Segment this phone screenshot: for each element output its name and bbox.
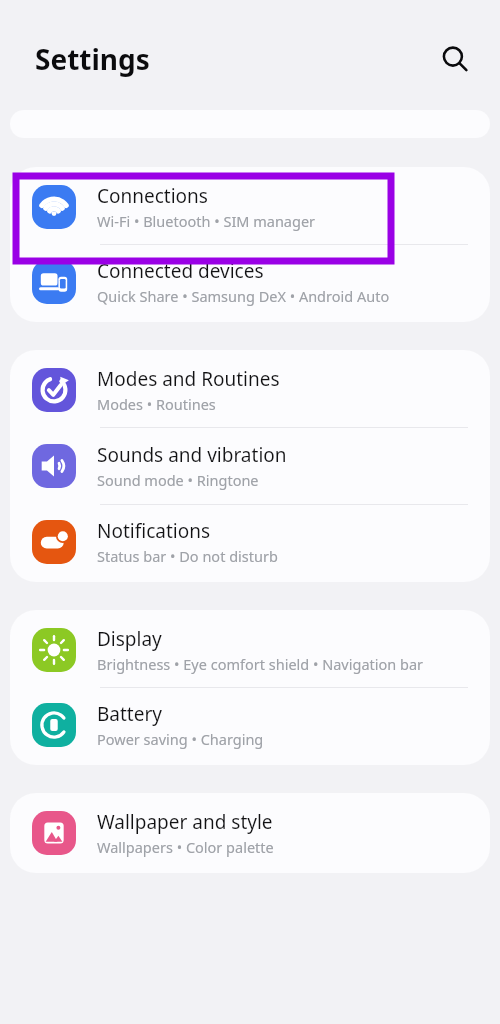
staticText: Wallpapers • Color palette bbox=[97, 837, 274, 857]
staticText: Display bbox=[97, 626, 162, 652]
staticText: Notifications bbox=[97, 518, 211, 544]
staticText: Wallpaper and style bbox=[97, 809, 273, 835]
button[interactable]: Display bbox=[10, 610, 490, 687]
button[interactable]: Connections bbox=[10, 167, 490, 244]
staticText: Sound mode • Ringtone bbox=[97, 470, 259, 490]
button[interactable]: Notifications bbox=[10, 505, 490, 582]
staticText: Power saving • Charging bbox=[97, 729, 264, 749]
staticText: Wi-Fi • Bluetooth • SIM manager bbox=[97, 211, 316, 231]
button[interactable]: Battery bbox=[10, 688, 490, 765]
button[interactable]: Sounds and vibration bbox=[10, 428, 490, 504]
staticText: Battery bbox=[97, 701, 162, 727]
button[interactable]: Search bbox=[429, 33, 481, 85]
staticText: Connections bbox=[97, 183, 208, 209]
staticText: Sounds and vibration bbox=[97, 442, 287, 468]
button[interactable]: Connected devices bbox=[10, 245, 490, 322]
staticText: Status bar • Do not disturb bbox=[97, 546, 278, 566]
staticText: Quick Share • Samsung DeX • Android Auto bbox=[97, 286, 390, 306]
staticText: Connected devices bbox=[97, 258, 264, 284]
staticText: Modes • Routines bbox=[97, 394, 216, 414]
staticText: Modes and Routines bbox=[97, 366, 280, 392]
button[interactable]: Wallpaper and style bbox=[10, 793, 490, 873]
staticText: Settings bbox=[35, 40, 150, 78]
staticText: Brightness • Eye comfort shield • Naviga… bbox=[97, 654, 424, 674]
button[interactable]: Modes and Routines bbox=[10, 350, 490, 427]
